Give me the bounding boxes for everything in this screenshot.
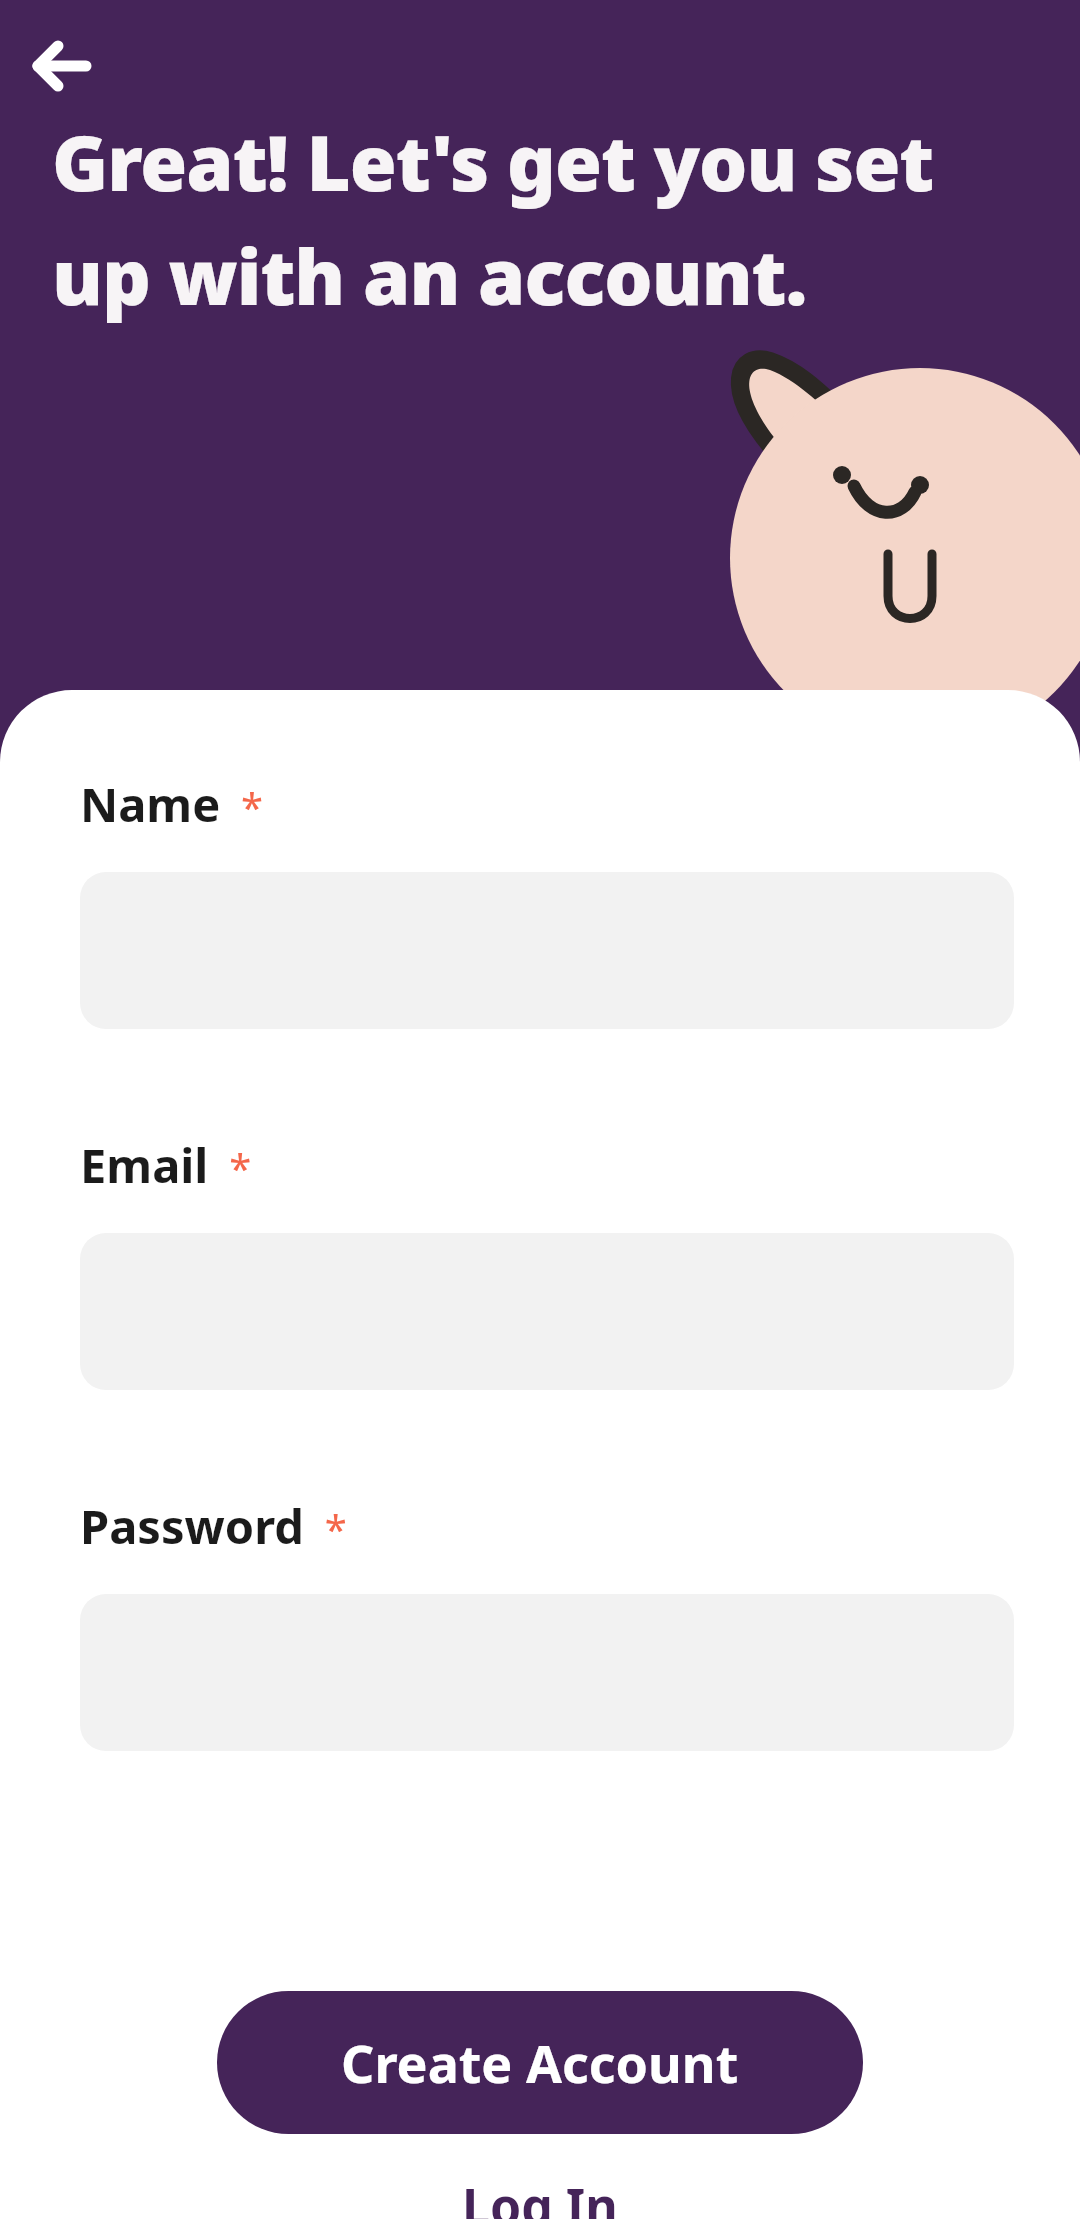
button[interactable]: Create Account (217, 1991, 863, 2134)
staticText: Log In (462, 2172, 618, 2219)
staticText: Password * (80, 1494, 347, 1558)
button[interactable]: Log In (0, 2172, 1080, 2219)
button[interactable]: Back (30, 32, 98, 100)
staticText: Name * (80, 772, 264, 836)
staticText: Create Account (341, 2027, 739, 2098)
staticText: Great! Let's get you set up with an acco… (52, 110, 1012, 327)
staticText: Email * (80, 1133, 252, 1197)
